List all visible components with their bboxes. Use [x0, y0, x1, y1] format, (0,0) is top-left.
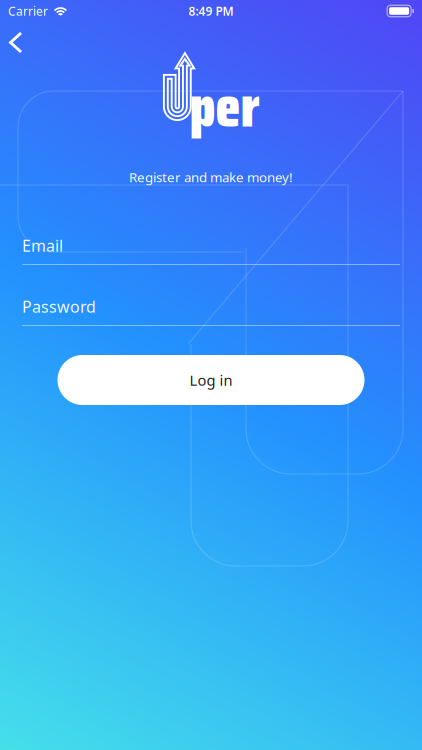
- button[interactable]: Log in: [57, 355, 364, 405]
- staticText: 8:49 PM: [188, 3, 233, 19]
- staticText: Password: [22, 296, 96, 317]
- staticText: Email: [22, 235, 63, 256]
- button[interactable]: Back: [0, 20, 34, 65]
- staticText: Register and make money!: [129, 168, 293, 186]
- staticText: per: [189, 61, 259, 152]
- staticText: Carrier: [8, 3, 48, 19]
- staticText: Log in: [189, 370, 232, 390]
